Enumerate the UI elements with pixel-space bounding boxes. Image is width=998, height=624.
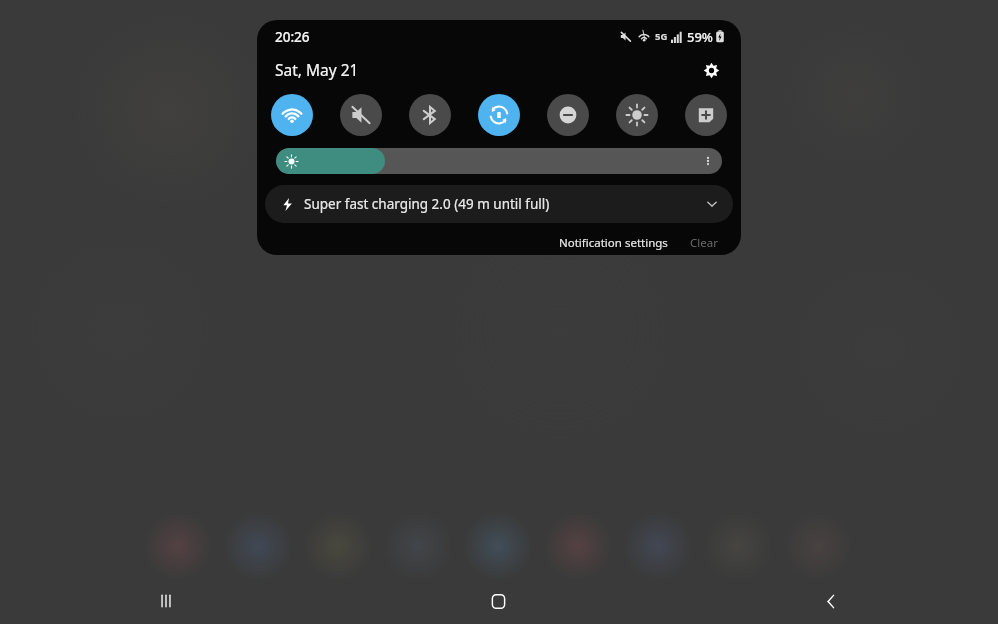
staticText: 20:26 — [275, 28, 310, 46]
staticText: Clear — [690, 235, 718, 251]
button[interactable]: Clear — [685, 232, 723, 254]
staticText: Notification settings — [559, 235, 668, 251]
button[interactable]: Brightness — [616, 94, 658, 136]
staticText: Super fast charging 2.0 (49 m until full… — [304, 195, 550, 213]
button[interactable]: Recent apps — [0, 578, 332, 624]
button[interactable]: Sound off — [340, 94, 382, 136]
staticText: Sat, May 21 — [275, 59, 359, 80]
button[interactable]: Home — [332, 578, 665, 624]
button[interactable]: Back — [665, 578, 998, 624]
button[interactable]: Wi-Fi — [271, 94, 313, 136]
button[interactable]: Notification settings — [554, 232, 673, 254]
staticText: 59% — [687, 28, 713, 46]
button[interactable]: Do not disturb — [547, 94, 589, 136]
button[interactable]: Super fast charging 2.0 (49 m until full… — [281, 185, 719, 223]
button[interactable]: Settings — [697, 56, 725, 84]
button[interactable]: Auto rotate — [478, 94, 520, 136]
button[interactable]: Bluetooth — [409, 94, 451, 136]
staticText: 5G — [655, 30, 668, 43]
button[interactable]: Brightness — [276, 148, 722, 174]
button[interactable]: Add tile — [685, 94, 727, 136]
